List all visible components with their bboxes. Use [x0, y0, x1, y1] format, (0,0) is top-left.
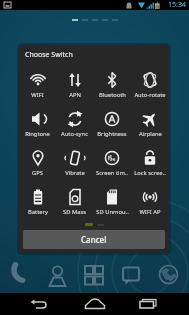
staticText: Bluetooth [99, 91, 126, 99]
button[interactable]: Auto-rotate [131, 63, 169, 102]
staticText: Ringtone [25, 130, 50, 138]
button[interactable]: Lock scree.. [131, 141, 169, 180]
staticText: Airplane [139, 130, 162, 138]
staticText: Auto-sync [61, 130, 88, 138]
button[interactable] [126, 293, 189, 315]
staticText: APN [69, 91, 81, 99]
button[interactable]: Battery [19, 180, 56, 219]
staticText: Choose Switch [25, 50, 73, 60]
staticText: SD Mass [63, 208, 86, 216]
button[interactable] [75, 256, 113, 292]
button[interactable]: Brightness [93, 102, 131, 141]
button[interactable]: GPS [19, 141, 56, 180]
staticText: WIFI [31, 91, 44, 99]
staticText: Auto-rotate [134, 91, 166, 99]
staticText: Cancel [81, 234, 107, 245]
button[interactable] [0, 256, 37, 292]
button[interactable]: WIFI AP [131, 180, 169, 219]
button[interactable]: WIFI [19, 63, 56, 102]
staticText: WIFI AP [139, 208, 161, 216]
button[interactable] [0, 293, 63, 315]
staticText: GPS [32, 169, 43, 177]
button[interactable]: Airplane [131, 102, 169, 141]
button[interactable]: Auto-sync [56, 102, 93, 141]
staticText: Screen tim.. [96, 169, 128, 177]
staticText: Vibrate [65, 169, 85, 177]
staticText: Brightness [97, 130, 127, 138]
staticText: Lock scree.. [134, 169, 166, 177]
button[interactable]: Vibrate [56, 141, 93, 180]
button[interactable] [37, 256, 75, 292]
button[interactable] [63, 293, 126, 315]
button[interactable]: Ringtone [19, 102, 56, 141]
button[interactable]: APN [56, 63, 93, 102]
button[interactable] [151, 256, 189, 292]
button[interactable]: Bluetooth [93, 63, 131, 102]
staticText: Battery [28, 208, 48, 216]
staticText: 15:34 [168, 0, 186, 10]
button[interactable]: SD Unmou.. [93, 180, 131, 219]
button[interactable] [113, 256, 151, 292]
button[interactable]: Screen tim.. [93, 141, 131, 180]
staticText: SD Unmou.. [96, 208, 129, 216]
button[interactable]: Cancel [23, 230, 165, 249]
button[interactable]: SD Mass [56, 180, 93, 219]
